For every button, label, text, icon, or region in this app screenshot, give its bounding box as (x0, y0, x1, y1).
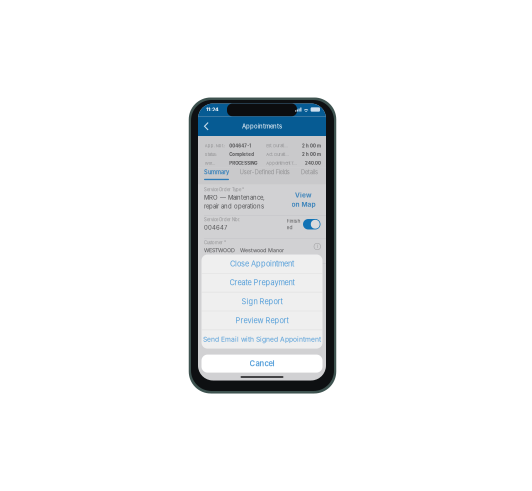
button[interactable]: Sign Report (201, 292, 322, 311)
staticText: Completed (229, 152, 254, 157)
staticText: Create Prepayment (229, 278, 294, 287)
staticText: on Map (291, 200, 315, 208)
staticText: Appointments (242, 123, 282, 130)
button[interactable]: View (291, 187, 320, 208)
staticText: Cancel (249, 359, 274, 368)
staticText: 240.00 (305, 161, 321, 166)
staticText: 11:24 (206, 106, 219, 113)
staticText: WESTWOOD (204, 247, 235, 253)
staticText: Act. Durati… (266, 152, 289, 157)
staticText: 004647-1 (229, 143, 251, 148)
staticText: Westwood Manor (240, 247, 284, 253)
staticText: Wor… (205, 161, 216, 166)
staticText: 004647 (204, 224, 227, 231)
staticText: Details (301, 169, 318, 176)
button[interactable]: Cancel (201, 355, 322, 373)
staticText: Sign Report (241, 297, 282, 306)
staticText: Est. Durati… (266, 143, 288, 148)
staticText: Summary (204, 169, 229, 176)
button[interactable]: User-Defined Fields (240, 168, 294, 185)
button[interactable]: Summary (198, 168, 240, 185)
staticText: Preview Report (235, 316, 288, 325)
button[interactable]: Details (301, 168, 326, 185)
button[interactable]: Finished (300, 219, 320, 229)
staticText: i (317, 244, 318, 249)
staticText: 2 h 00 m (302, 152, 321, 157)
staticText: App. Nbr.: (205, 143, 225, 148)
staticText: Status: (205, 152, 217, 157)
button[interactable]: Create Prepayment (201, 273, 322, 292)
staticText: 2 h 00 m (302, 143, 321, 148)
staticText: Send Email with Signed Appointment (203, 335, 321, 343)
button[interactable]: Back (198, 118, 214, 135)
button[interactable]: Send Email with Signed Appointment (201, 330, 322, 349)
staticText: View (295, 191, 312, 199)
staticText: repair and operations (204, 203, 264, 210)
staticText: User-Defined Fields (240, 169, 290, 176)
staticText: PROCESSING (229, 161, 257, 166)
staticText: Service Order Type * (204, 187, 244, 192)
button[interactable]: Close Appointment (201, 254, 322, 273)
staticText: Service Order Nbr. (204, 217, 240, 222)
staticText: ed (286, 224, 292, 230)
staticText: Close Appointment (230, 259, 294, 268)
button[interactable]: Preview Report (201, 311, 322, 330)
staticText: Appointment T… (266, 161, 297, 166)
staticText: Customer * (204, 240, 226, 245)
staticText: Finish (286, 218, 300, 224)
button[interactable]: Information (314, 240, 321, 250)
staticText: MRO — Maintenance, (204, 194, 265, 201)
